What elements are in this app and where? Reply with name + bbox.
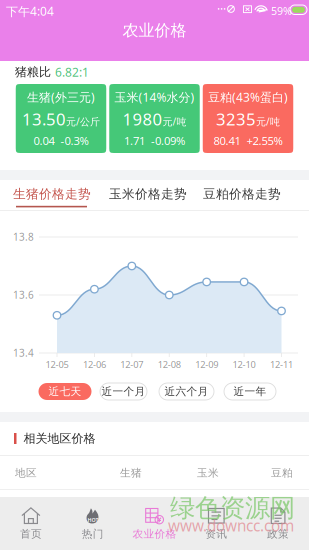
staticText: 1.71 -0.09% bbox=[124, 133, 185, 148]
staticText: 12-11 bbox=[270, 358, 293, 371]
staticText: 12-05 bbox=[45, 358, 68, 371]
staticText: 首页 bbox=[20, 527, 42, 541]
staticText: 13.6 bbox=[13, 288, 34, 302]
button[interactable]: 政策 bbox=[247, 497, 309, 550]
button[interactable]: 豆粕价格走势 bbox=[195, 180, 289, 208]
staticText: 6.82:1 bbox=[55, 64, 89, 80]
staticText: 近七天 bbox=[48, 385, 81, 398]
staticText: 玉米价格走势 bbox=[109, 186, 187, 202]
staticText: 59% bbox=[271, 3, 292, 18]
button[interactable]: 近六个月 bbox=[159, 383, 214, 400]
button[interactable]: 玉米价格走势 bbox=[101, 180, 195, 208]
staticText: 玉米(14%水分) bbox=[114, 89, 194, 105]
staticText: 豆粕 bbox=[271, 466, 293, 480]
staticText: 生猪 bbox=[120, 466, 142, 480]
button[interactable]: 农业价格 bbox=[124, 497, 185, 550]
staticText: 豆粕价格走势 bbox=[203, 186, 281, 202]
staticText: www.downcc.com bbox=[168, 515, 294, 536]
staticText: 热门 bbox=[82, 527, 104, 541]
staticText: 地区 bbox=[15, 466, 37, 480]
staticText: ··· bbox=[217, 1, 226, 17]
staticText: 近一年 bbox=[233, 385, 266, 398]
staticText: 猪粮比 bbox=[15, 64, 51, 79]
staticText: 12-07 bbox=[120, 358, 143, 371]
staticText: 相关地区价格 bbox=[23, 431, 95, 446]
button[interactable]: 生猪价格走势 bbox=[3, 180, 101, 208]
staticText: 元/吨 bbox=[162, 115, 186, 128]
staticText: 生猪价格走势 bbox=[13, 186, 91, 202]
staticText: 下午4:04 bbox=[6, 3, 54, 19]
staticText: 12-09 bbox=[195, 358, 218, 371]
staticText: 资讯 bbox=[205, 527, 227, 541]
staticText: 80.41 +2.55% bbox=[213, 133, 282, 148]
button[interactable]: 资讯 bbox=[185, 497, 247, 550]
button[interactable]: 首页 bbox=[0, 497, 62, 550]
button[interactable]: 近七天 bbox=[38, 383, 91, 400]
staticText: 1980 bbox=[122, 108, 162, 130]
staticText: 13.50 bbox=[22, 108, 66, 130]
staticText: 元/公斤 bbox=[66, 115, 100, 128]
staticText: 13.8 bbox=[13, 230, 34, 244]
staticText: 近六个月 bbox=[164, 385, 208, 398]
staticText: 生猪(外三元) bbox=[27, 89, 95, 105]
staticText: 玉米 bbox=[197, 466, 219, 480]
staticText: 近一个月 bbox=[101, 385, 145, 398]
staticText: 豆粕(43%蛋白) bbox=[208, 89, 288, 105]
staticText: 农业价格 bbox=[132, 527, 176, 541]
staticText: 元/吨 bbox=[256, 115, 280, 128]
staticText: 12-06 bbox=[83, 358, 106, 371]
staticText: 政策 bbox=[267, 527, 289, 541]
staticText: 农业价格 bbox=[122, 20, 186, 41]
staticText: 13.4 bbox=[13, 346, 34, 360]
staticText: HOT bbox=[87, 516, 98, 524]
button[interactable]: 近一个月 bbox=[100, 383, 147, 400]
staticText: 3235 bbox=[216, 108, 256, 130]
staticText: 12-08 bbox=[158, 358, 181, 371]
staticText: 12-10 bbox=[233, 358, 256, 371]
button[interactable]: HOT bbox=[62, 497, 124, 550]
staticText: 绿色资源网 bbox=[170, 492, 295, 524]
staticText: 0.04 -0.3% bbox=[33, 133, 88, 148]
button[interactable]: 近一年 bbox=[224, 383, 276, 400]
